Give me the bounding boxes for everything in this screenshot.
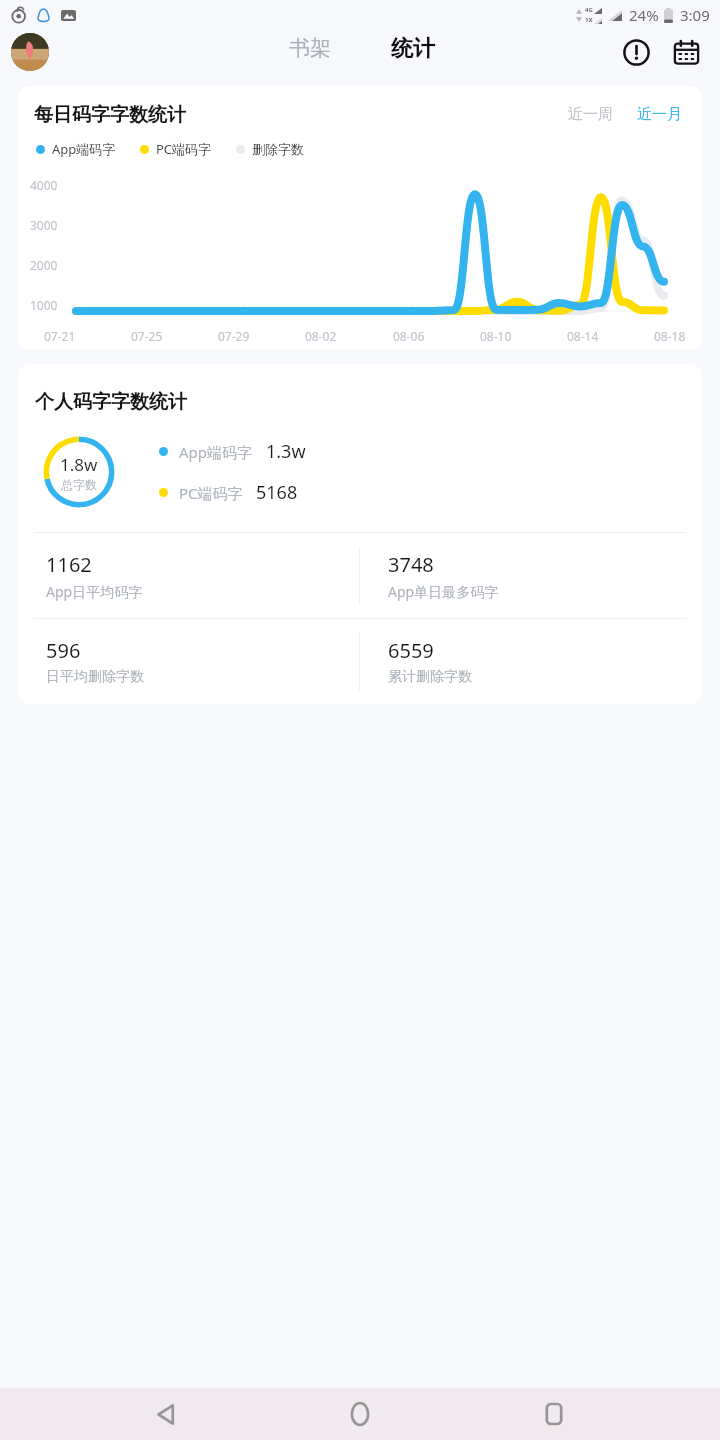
staticText: 4000 (30, 177, 58, 193)
button[interactable]: 1162 (18, 533, 359, 618)
staticText: 近一周 (568, 105, 613, 124)
staticText: 1.3w (266, 439, 306, 464)
button[interactable]: Profile avatar (11, 33, 49, 71)
staticText: 1X (585, 16, 593, 24)
staticText: 1.8w (60, 453, 98, 476)
staticText: 6559 (388, 637, 434, 664)
staticText: 近一月 (637, 105, 682, 124)
button[interactable]: Back (138, 1388, 194, 1440)
staticText: PC端码字 (156, 140, 212, 158)
staticText: 每日码字字数统计 (34, 103, 186, 127)
staticText: 3000 (30, 217, 58, 233)
staticText: 07-29 (218, 328, 250, 344)
staticText: 596 (46, 637, 81, 664)
button[interactable]: Notice (618, 34, 654, 70)
button[interactable]: 书架 (273, 29, 347, 67)
button[interactable]: 596 (18, 619, 359, 704)
staticText: 08-10 (480, 328, 512, 344)
button[interactable]: 6559 (360, 619, 702, 704)
button[interactable]: 近一月 (629, 100, 690, 129)
staticText: 删除字数 (252, 141, 304, 157)
staticText: 1162 (46, 551, 92, 578)
staticText: 个人码字字数统计 (35, 390, 187, 414)
staticText: 08-02 (305, 328, 337, 344)
button[interactable]: Calendar (668, 34, 704, 70)
staticText: 07-25 (131, 328, 163, 344)
staticText: 3748 (388, 551, 434, 578)
staticText: App端码字 (179, 442, 253, 462)
staticText: 统计 (391, 35, 435, 63)
staticText: App单日最多码字 (388, 582, 499, 601)
staticText: 5168 (256, 480, 298, 505)
staticText: App端码字 (52, 140, 116, 158)
staticText: 累计删除字数 (388, 668, 472, 686)
staticText: 4G (585, 6, 593, 14)
staticText: 08-18 (654, 328, 686, 344)
staticText: 总字数 (61, 477, 97, 492)
staticText: App日平均码字 (46, 582, 143, 601)
staticText: 3:09 (680, 5, 710, 25)
staticText: 2000 (30, 257, 58, 273)
staticText: 24% (629, 5, 659, 25)
staticText: 08-14 (567, 328, 599, 344)
staticText: 08-06 (393, 328, 425, 344)
button[interactable]: 近一周 (560, 100, 621, 129)
staticText: 书架 (289, 35, 331, 61)
button[interactable]: 3748 (360, 533, 702, 618)
button[interactable]: Recents (526, 1388, 582, 1440)
button[interactable]: 统计 (379, 29, 447, 75)
staticText: PC端码字 (179, 483, 243, 503)
staticText: 07-21 (44, 328, 76, 344)
staticText: 日平均删除字数 (46, 668, 144, 686)
button[interactable]: Home (332, 1388, 388, 1440)
staticText: 1000 (30, 297, 58, 313)
